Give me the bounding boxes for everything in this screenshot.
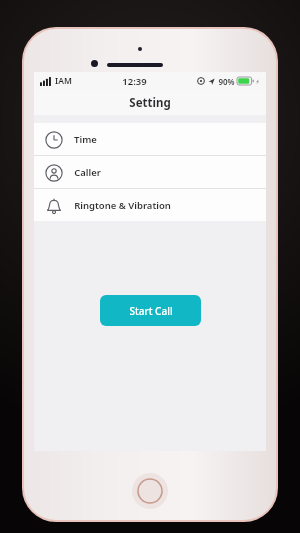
staticText: Caller [74,166,101,179]
staticText: Time [74,133,97,146]
staticText: IAM [55,75,72,87]
staticText: 12:39 [122,75,147,88]
button[interactable]: Ringtone & Vibration [34,189,266,221]
button[interactable]: Caller [34,156,266,188]
staticText: Ringtone & Vibration [74,199,171,212]
staticText: ⚡ [255,78,260,85]
staticText: Start Call [129,304,173,318]
button[interactable]: Home [132,473,168,509]
staticText: Setting [129,95,171,111]
staticText: 90% [218,76,235,87]
button[interactable]: Time [34,123,266,155]
button[interactable]: Start Call [100,295,201,326]
